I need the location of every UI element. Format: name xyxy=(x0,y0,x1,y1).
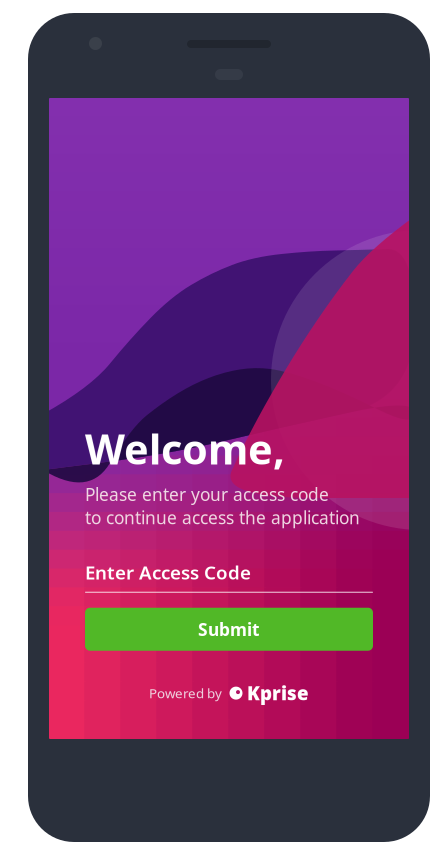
staticText: to continue access the application xyxy=(85,506,360,529)
staticText: Kprise xyxy=(247,681,309,705)
staticText: Powered by xyxy=(149,684,222,702)
staticText: Enter Access Code xyxy=(85,560,251,585)
staticText: Welcome, xyxy=(85,421,285,476)
staticText: Please enter your access code xyxy=(85,483,329,506)
staticText: Submit xyxy=(198,618,260,641)
button[interactable]: Submit xyxy=(85,608,373,651)
